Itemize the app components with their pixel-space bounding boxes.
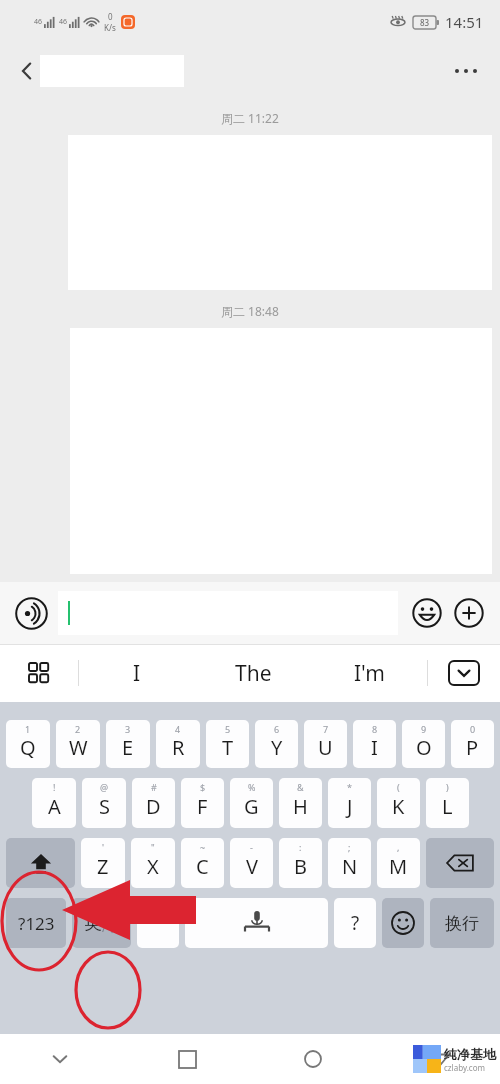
staticText: U <box>318 734 333 761</box>
staticText: G <box>244 793 259 820</box>
staticText: S <box>99 793 110 820</box>
staticText: R <box>172 734 185 761</box>
button[interactable]: I'm <box>311 644 427 702</box>
staticText: czlaby.com <box>444 1062 485 1073</box>
button[interactable]: 3 <box>106 720 150 768</box>
staticText: F <box>197 793 208 820</box>
button[interactable]: More functions <box>450 594 488 632</box>
button[interactable]: 换行 <box>430 898 494 948</box>
button[interactable]: More options <box>446 51 486 91</box>
button[interactable]: 1 <box>6 720 50 768</box>
staticText: Z <box>97 853 109 880</box>
button[interactable]: 2 <box>56 720 100 768</box>
staticText: " <box>151 841 155 853</box>
button[interactable]: 6 <box>255 720 298 768</box>
staticText: 14:51 <box>445 12 484 32</box>
button[interactable]: Keyboard menu <box>0 644 78 702</box>
button[interactable]: Shift <box>6 838 75 888</box>
button[interactable]: Emoji keyboard <box>382 898 424 948</box>
button[interactable]: ? <box>334 898 376 948</box>
button[interactable]: Home <box>293 1039 333 1079</box>
button[interactable]: " <box>131 838 175 888</box>
button[interactable] <box>58 591 398 635</box>
staticText: I'm <box>354 659 385 688</box>
staticText: D <box>146 793 161 820</box>
button[interactable]: 5 <box>206 720 249 768</box>
staticText: 46 <box>34 17 43 27</box>
staticText: C <box>196 853 209 880</box>
button[interactable]: , <box>377 838 420 888</box>
button[interactable]: Backspace <box>426 838 494 888</box>
staticText: ? <box>351 910 360 936</box>
staticText: 7 <box>323 723 329 735</box>
staticText: ) <box>446 781 449 793</box>
staticText: , <box>397 841 400 853</box>
staticText: : <box>299 841 302 853</box>
button[interactable]: Back <box>420 1039 460 1079</box>
staticText: 46 <box>59 17 68 27</box>
button[interactable]: ' <box>81 838 125 888</box>
staticText: 0 <box>108 11 113 22</box>
staticText: ( <box>397 781 400 793</box>
button[interactable]: Recents <box>167 1039 207 1079</box>
button[interactable]: : <box>279 838 322 888</box>
button[interactable]: 9 <box>402 720 445 768</box>
button[interactable]: Collapse <box>40 1039 80 1079</box>
staticText: /中 <box>102 919 119 935</box>
staticText: & <box>297 781 304 793</box>
staticText: 周二 11:22 <box>221 110 279 126</box>
button[interactable]: Space <box>185 898 328 948</box>
button[interactable]: 4 <box>156 720 200 768</box>
staticText: 83 <box>420 17 430 28</box>
button[interactable]: @ <box>82 778 126 828</box>
staticText: @ <box>100 781 109 793</box>
button[interactable]: ! <box>32 778 76 828</box>
button[interactable]: ?123 <box>6 898 66 948</box>
button[interactable]: I <box>79 644 195 702</box>
button[interactable]: - <box>230 838 273 888</box>
staticText: L <box>442 793 453 820</box>
staticText: Q <box>20 734 36 761</box>
staticText: ; <box>348 841 351 853</box>
staticText: 5 <box>225 723 231 735</box>
button[interactable]: * <box>328 778 371 828</box>
button[interactable]: Voice input <box>12 594 50 632</box>
staticText: - <box>250 841 253 853</box>
button[interactable]: & <box>279 778 322 828</box>
button[interactable]: 7 <box>304 720 347 768</box>
staticText: Y <box>271 734 283 761</box>
staticText: 6 <box>274 723 280 735</box>
button[interactable]: 0 <box>451 720 494 768</box>
staticText: E <box>122 734 134 761</box>
staticText: I <box>133 659 141 688</box>
button[interactable]: $ <box>181 778 224 828</box>
staticText: 英 <box>84 912 102 935</box>
staticText: The <box>235 659 272 688</box>
staticText: M <box>389 853 408 880</box>
staticText: ' <box>102 841 105 853</box>
button[interactable]: ~ <box>181 838 224 888</box>
button[interactable]: Hide keyboard <box>428 644 500 702</box>
button[interactable]: ( <box>377 778 420 828</box>
button[interactable]: The <box>195 644 311 702</box>
staticText: W <box>69 734 88 761</box>
button[interactable]: % <box>230 778 273 828</box>
staticText: P <box>466 734 479 761</box>
staticText: J <box>347 793 353 820</box>
staticText: # <box>151 781 157 793</box>
button[interactable]: # <box>132 778 175 828</box>
button[interactable]: ; <box>328 838 371 888</box>
button[interactable]: 8 <box>353 720 396 768</box>
button[interactable]: Back <box>8 52 46 90</box>
button[interactable]: · <box>137 898 179 948</box>
button[interactable]: Emoji <box>408 594 446 632</box>
staticText: H <box>293 793 308 820</box>
button[interactable]: ) <box>426 778 469 828</box>
staticText: N <box>342 853 358 880</box>
staticText: 3 <box>125 723 131 735</box>
staticText: 换行 <box>445 913 479 934</box>
button[interactable]: 英 <box>72 898 131 948</box>
